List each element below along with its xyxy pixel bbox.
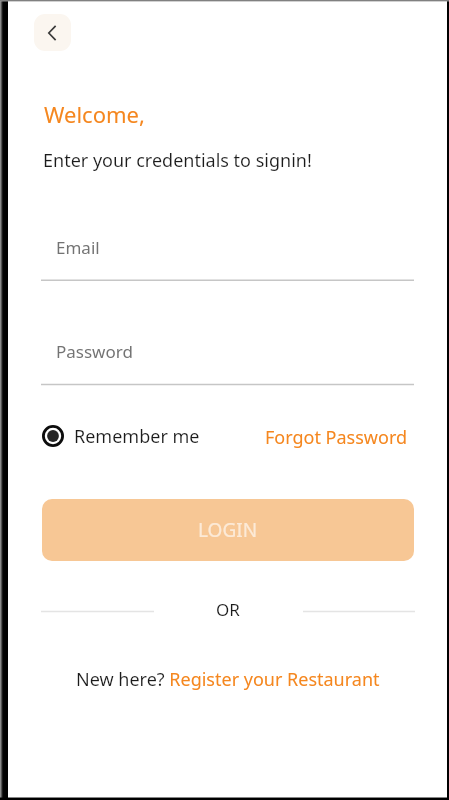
staticText: Email [56,236,100,259]
button[interactable]: Back [34,14,71,51]
staticText: Enter your credentials to signin! [43,148,312,173]
staticText: OR [216,598,240,621]
staticText: LOGIN [198,517,258,543]
staticText: Password [56,340,133,363]
button[interactable]: Remember me [39,422,200,450]
staticText: Remember me [74,424,200,449]
staticText: Welcome, [44,99,145,129]
button[interactable]: LOGIN [42,499,414,561]
button[interactable]: Forgot Password [265,425,408,450]
button[interactable]: New here? Register your Restaurant [76,667,380,692]
